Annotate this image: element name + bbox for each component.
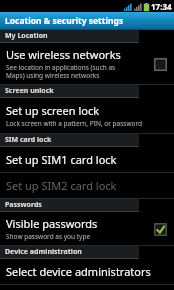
staticText: Set up SIM1 card lock: [6, 152, 117, 167]
button[interactable]: Visible passwords: [0, 212, 174, 246]
button[interactable]: Use wireless networks, off: [152, 56, 168, 72]
staticText: Use wireless networks: [6, 47, 121, 62]
staticText: Visible passwords: [6, 216, 98, 231]
button[interactable]: Set up SIM1 card lock: [0, 147, 174, 173]
staticText: 17:34: [151, 1, 172, 12]
button[interactable]: Visible passwords, on: [152, 221, 168, 237]
staticText: Screen unlock: [5, 86, 54, 96]
button[interactable]: Use wireless networks: [0, 43, 174, 85]
staticText: My Location: [5, 31, 48, 41]
button[interactable]: Select device administrators: [0, 259, 174, 285]
staticText: Passwords: [5, 200, 42, 210]
staticText: See location in applications (such as Ma…: [6, 63, 116, 80]
staticText: Select device administrators: [6, 264, 151, 279]
button[interactable]: Set up screen lock: [0, 98, 174, 134]
staticText: Set up screen lock: [6, 103, 100, 118]
staticText: Show password as you type: [6, 232, 91, 241]
staticText: Set up SIM2 card lock: [6, 178, 117, 193]
staticText: Location & security settings: [5, 15, 124, 27]
button[interactable]: Set up SIM2 card lock: [0, 173, 174, 199]
staticText: Device administration: [5, 247, 82, 257]
staticText: Lock screen with a pattern, PIN, or pass…: [6, 119, 143, 128]
staticText: SIM card lock: [5, 135, 52, 145]
